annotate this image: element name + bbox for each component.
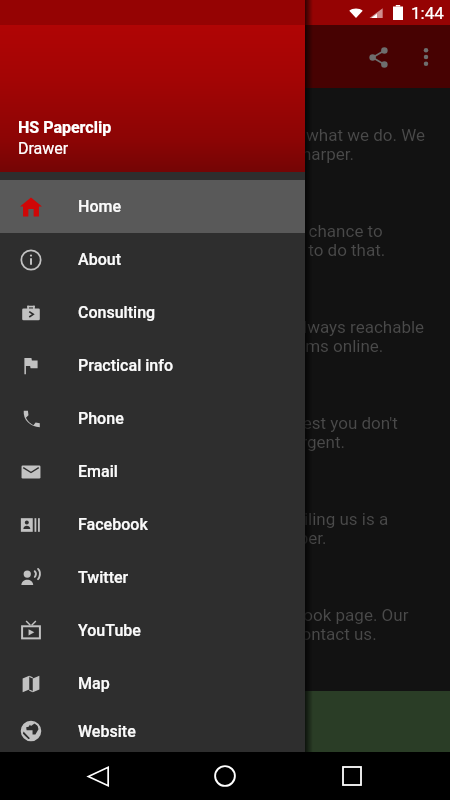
button[interactable]: Back [74, 752, 122, 800]
staticText: Drawer [18, 139, 69, 158]
staticText: Welcome to HS Paperclip. Read about what… [16, 125, 426, 164]
button[interactable]: YouTube [0, 604, 305, 657]
staticText: Home [78, 197, 121, 216]
staticText: Facebook [78, 515, 148, 534]
button[interactable]: Practical info [0, 339, 305, 392]
button[interactable]: Home [0, 180, 305, 233]
staticText: Consulting [78, 303, 156, 322]
staticText: About [78, 250, 121, 269]
staticText: Phone [78, 409, 124, 428]
staticText: HS Paperclip [18, 118, 112, 137]
staticText: Email [78, 462, 118, 481]
staticText: Website [78, 722, 136, 741]
staticText: Practical info [78, 356, 173, 375]
button[interactable]: Twitter [0, 551, 305, 604]
button[interactable]: About [0, 233, 305, 286]
staticText: YouTube [78, 621, 141, 640]
button[interactable]: Share [354, 33, 402, 81]
button[interactable]: Consulting [0, 286, 305, 339]
staticText: Twitter [78, 568, 129, 587]
button[interactable]: Facebook [0, 498, 305, 551]
staticText: Everyone out there deserves to get the c… [16, 221, 386, 260]
button[interactable]: Phone [0, 392, 305, 445]
button[interactable]: Recents [328, 752, 376, 800]
button[interactable]: Map [0, 657, 305, 710]
staticText: Have a question for us? Then we are alwa… [16, 317, 425, 356]
staticText: Stay up to date by following our Faceboo… [16, 605, 409, 644]
staticText: Map [78, 674, 110, 693]
button[interactable]: More options [402, 33, 450, 81]
staticText: If you are not one for phone calls, emai… [16, 509, 389, 548]
staticText: Feel free to call us, but we would sugge… [16, 413, 398, 452]
staticText: 1:44 [411, 3, 444, 23]
button[interactable]: Website [0, 710, 305, 752]
button[interactable]: Email [0, 445, 305, 498]
button[interactable]: Home [201, 752, 249, 800]
